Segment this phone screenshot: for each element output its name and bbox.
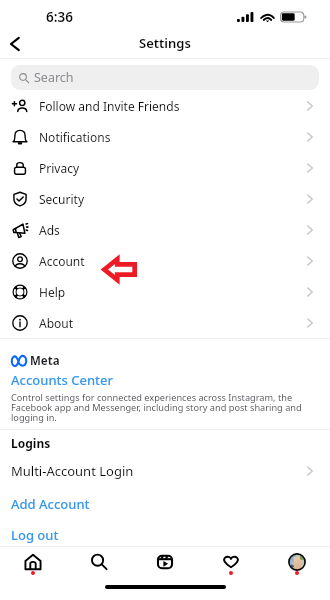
staticText: Notifications [39, 129, 111, 145]
button[interactable]: Notifications [0, 121, 330, 152]
button[interactable]: Profile [264, 547, 330, 576]
staticText: 6:36 [46, 8, 73, 26]
button[interactable]: Help [0, 276, 330, 307]
button[interactable]: Follow and Invite Friends [0, 90, 330, 121]
button[interactable]: Multi-Account Login [0, 460, 330, 481]
button[interactable]: Reels [132, 547, 198, 576]
staticText: Log out [11, 526, 59, 544]
staticText: Privacy [39, 160, 80, 176]
button[interactable]: Back [0, 30, 30, 58]
staticText: Help [39, 284, 66, 300]
button[interactable]: Home [0, 547, 66, 576]
staticText: Ads [39, 222, 60, 238]
button[interactable]: Privacy [0, 152, 330, 183]
button[interactable]: Ads [0, 214, 330, 245]
button[interactable]: Security [0, 183, 330, 214]
staticText: Meta [30, 353, 60, 369]
staticText: Settings [139, 34, 191, 52]
staticText: Add Account [11, 495, 90, 513]
button[interactable]: Accounts Center [11, 371, 114, 389]
button[interactable]: Search [66, 547, 132, 576]
staticText: Security [39, 191, 85, 207]
button[interactable]: About [0, 307, 330, 338]
button[interactable]: Search [11, 65, 319, 90]
staticText: Accounts Center [11, 371, 114, 389]
staticText: Control settings for connected experienc… [11, 391, 312, 424]
staticText: Multi-Account Login [11, 462, 134, 480]
button[interactable]: Add Account [0, 495, 330, 513]
staticText: Follow and Invite Friends [39, 98, 180, 114]
staticText: About [39, 315, 74, 331]
staticText: Logins [11, 435, 51, 451]
staticText: Account [39, 253, 85, 269]
button[interactable]: Log out [0, 526, 330, 544]
staticText: Search [34, 69, 74, 86]
button[interactable]: Activity [198, 547, 264, 576]
button[interactable]: Account [0, 245, 330, 276]
